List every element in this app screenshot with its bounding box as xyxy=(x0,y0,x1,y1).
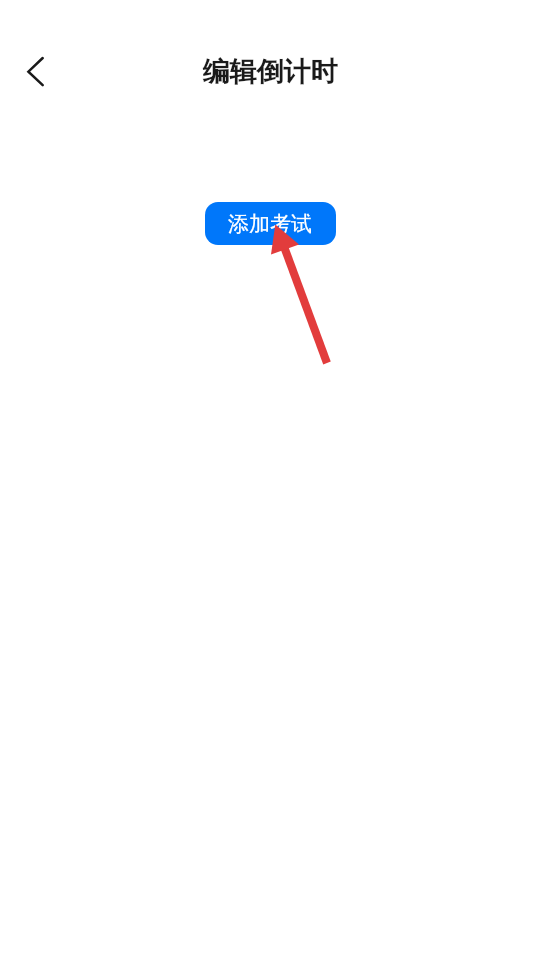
button[interactable]: Back xyxy=(13,49,58,94)
staticText: 添加考试 xyxy=(228,211,312,237)
staticText: 编辑倒计时 xyxy=(0,55,540,89)
button[interactable]: 添加考试 xyxy=(205,202,336,245)
